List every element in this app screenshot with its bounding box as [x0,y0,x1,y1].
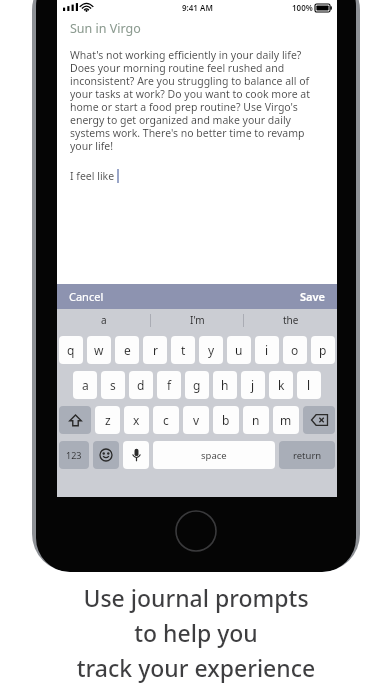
button[interactable]: I'm [151,309,244,331]
button[interactable]: b [213,406,239,434]
staticText: m [280,412,292,428]
button[interactable]: Backspace [303,406,335,434]
staticText: s [110,377,116,393]
button[interactable]: return [279,441,335,469]
staticText: g [193,377,201,393]
staticText: c [163,412,169,428]
button[interactable]: space [153,441,275,469]
button[interactable]: t [171,336,195,364]
staticText: x [133,412,140,428]
staticText: a [101,313,107,327]
button[interactable]: r [143,336,167,364]
button[interactable]: d [129,371,153,399]
button[interactable]: v [183,406,209,434]
button[interactable]: p [311,336,335,364]
staticText: h [221,377,229,393]
staticText: 9:41 AM [182,2,213,13]
button[interactable]: f [157,371,181,399]
button[interactable]: o [283,336,307,364]
staticText: n [252,412,260,428]
button[interactable]: q [59,336,83,364]
button[interactable]: e [115,336,139,364]
button[interactable]: z [95,406,120,434]
staticText: Cancel [69,289,104,304]
staticText: a [82,377,89,393]
staticText: z [105,412,111,428]
button[interactable]: Save [288,284,337,309]
button[interactable]: x [124,406,149,434]
staticText: Sun in Virgo [70,20,141,37]
staticText: k [278,377,285,393]
button[interactable]: Shift [59,406,91,434]
button[interactable]: y [199,336,223,364]
staticText: p [319,342,327,358]
staticText: track your experience [0,652,392,683]
button[interactable]: m [273,406,299,434]
staticText: v [193,412,200,428]
button[interactable]: i [255,336,279,364]
button[interactable]: a [73,371,97,399]
staticText: 123 [66,449,82,461]
button[interactable]: c [153,406,179,434]
staticText: Use journal prompts [0,582,392,613]
staticText: w [94,342,104,358]
staticText: I'm [190,313,205,327]
staticText: e [124,342,131,358]
staticText: 100% [292,2,313,13]
staticText: d [137,377,145,393]
staticText: l [307,377,311,393]
button[interactable]: j [241,371,265,399]
staticText: What's not working efficiently in your d… [70,48,324,153]
button[interactable]: k [269,371,293,399]
staticText: Save [300,289,325,304]
staticText: r [153,342,158,358]
staticText: space [201,449,227,462]
button[interactable]: w [87,336,111,364]
button[interactable]: Emoji [93,441,119,469]
button[interactable]: n [243,406,269,434]
button[interactable]: u [227,336,251,364]
button[interactable]: s [101,371,125,399]
button[interactable]: Dictation [123,441,149,469]
staticText: I feel like [70,169,115,183]
button[interactable]: g [185,371,209,399]
button[interactable]: the [244,309,337,331]
button[interactable]: a [57,309,151,331]
button[interactable]: l [297,371,321,399]
staticText: j [251,377,255,393]
button[interactable]: Cancel [57,284,116,309]
staticText: t [181,342,186,358]
staticText: the [283,313,299,327]
staticText: i [265,342,269,358]
staticText: f [167,377,172,393]
staticText: to help you [0,617,392,648]
staticText: q [67,342,75,358]
button[interactable]: 123 [59,441,89,469]
button[interactable]: h [213,371,237,399]
staticText: b [222,412,230,428]
staticText: y [208,342,215,358]
staticText: u [235,342,243,358]
staticText: o [291,342,299,358]
staticText: return [293,449,322,462]
